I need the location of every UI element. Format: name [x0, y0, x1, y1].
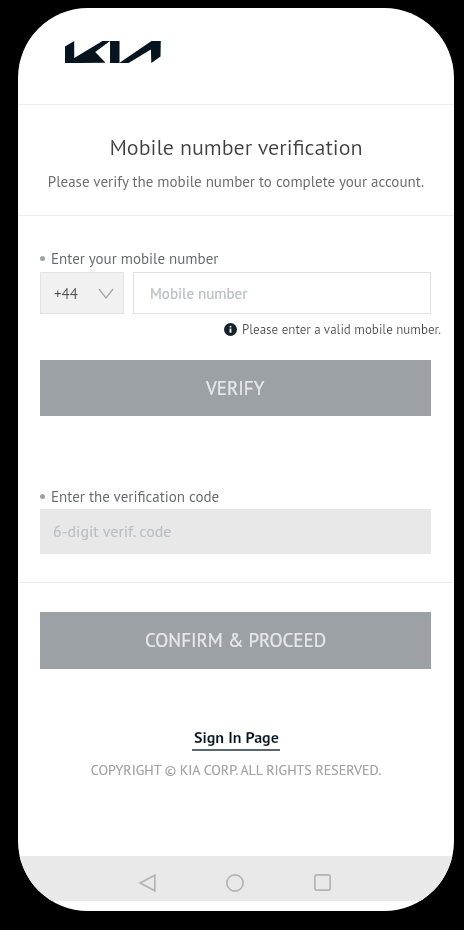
staticText: Mobile number [150, 284, 248, 303]
button[interactable]: Back [107, 864, 188, 901]
staticText: Enter your mobile number [51, 249, 219, 268]
staticText: Please enter a valid mobile number. [242, 321, 441, 338]
staticText: CONFIRM & PROCEED [145, 628, 327, 653]
staticText: +44 [54, 284, 78, 303]
staticText: Sign In Page [194, 727, 279, 748]
button[interactable]: CONFIRM & PROCEED [40, 612, 431, 669]
button[interactable]: +44 [40, 272, 124, 314]
button[interactable]: Mobile number [133, 272, 431, 314]
staticText: 6-digit verif. code [53, 521, 172, 542]
button[interactable]: 6-digit verif. code [40, 509, 431, 554]
button[interactable]: VERIFY [40, 360, 431, 416]
staticText: Please verify the mobile number to compl… [18, 172, 454, 191]
button[interactable]: Recent apps [282, 864, 363, 901]
staticText: COPYRIGHT © KIA CORP. ALL RIGHTS RESERVE… [18, 761, 454, 779]
staticText: Mobile number verification [18, 133, 454, 161]
staticText: VERIFY [206, 376, 265, 401]
staticText: Enter the verification code [51, 487, 220, 506]
button[interactable]: Sign In Page [190, 727, 282, 751]
button[interactable]: Home [194, 864, 275, 901]
